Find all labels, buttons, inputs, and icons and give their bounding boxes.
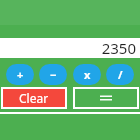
staticText: 2350	[101, 38, 136, 58]
button[interactable]: operator x	[73, 64, 101, 85]
staticText: −	[50, 67, 57, 82]
staticText: x	[84, 67, 91, 82]
staticText: Clear	[19, 90, 49, 106]
button[interactable]: operator /	[106, 64, 134, 85]
button[interactable]	[75, 89, 137, 107]
button[interactable]: operator −	[39, 64, 67, 85]
button[interactable]: Clear	[3, 89, 65, 107]
staticText: /	[118, 67, 123, 82]
button[interactable]: 2350	[0, 38, 140, 58]
staticText: +	[17, 67, 24, 82]
button[interactable]: operator +	[6, 64, 34, 85]
